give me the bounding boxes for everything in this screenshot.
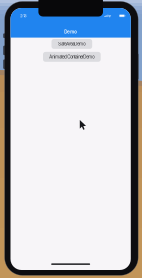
- button[interactable]: AnimatedContainerDemo: [43, 52, 101, 62]
- button[interactable]: SafeAreaDemo: [51, 39, 92, 49]
- button[interactable]: Demo: [10, 29, 131, 35]
- staticText: Demo: [64, 29, 77, 35]
- staticText: 2:13: [20, 14, 26, 18]
- staticText: AnimatedContainerDemo: [49, 54, 94, 59]
- staticText: SafeAreaDemo: [58, 41, 85, 47]
